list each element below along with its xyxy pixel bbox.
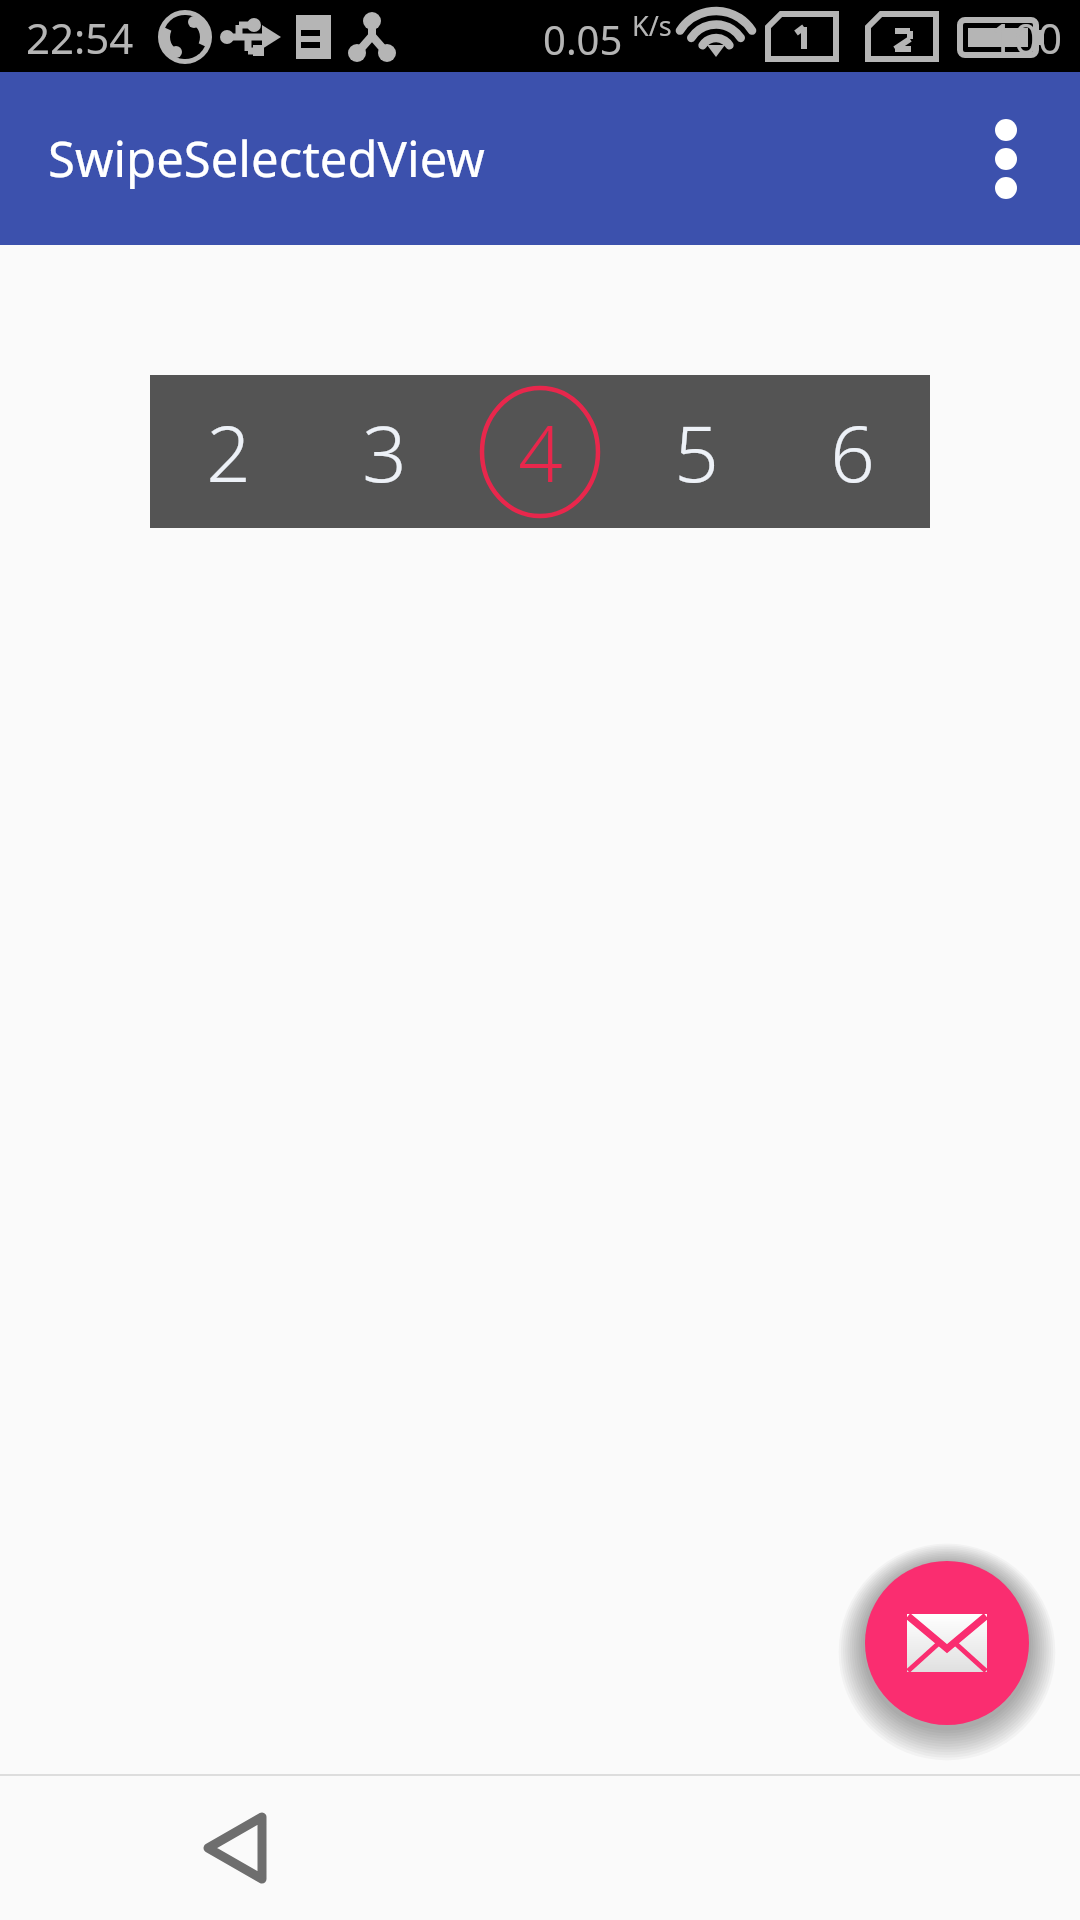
staticText: 5 [674,399,719,505]
staticText: 100 [990,9,1063,66]
button[interactable]: 2 [150,375,306,528]
staticText: 6 [830,399,875,505]
button[interactable]: Back [170,1776,300,1920]
staticText: 3 [362,399,407,505]
staticText: SwipeSelectedView [48,125,485,192]
button[interactable]: 3 [306,375,462,528]
button[interactable]: Compose mail [865,1561,1029,1725]
button[interactable]: 5 [618,375,774,528]
button[interactable]: 6 [774,375,930,528]
staticText: 22:54 [26,9,134,66]
staticText: 2 [206,399,251,505]
button[interactable]: 4 [462,375,618,528]
button[interactable]: More options [946,99,1066,219]
staticText: 0.05 [543,12,623,66]
staticText: 4 [518,399,563,505]
staticText: K/s [632,7,672,44]
